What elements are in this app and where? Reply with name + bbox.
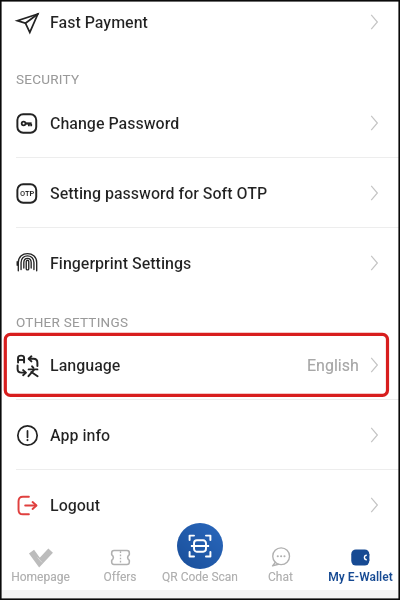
- staticText: Fast Payment: [50, 13, 148, 32]
- staticText: Change Password: [50, 114, 180, 133]
- staticText: My E-Wallet: [328, 570, 393, 584]
- other: QR Code Scan: [177, 523, 223, 569]
- staticText: Homepage: [11, 570, 70, 584]
- button[interactable]: Fingerprint Settings: [0, 228, 400, 298]
- button[interactable]: OTP: [0, 158, 400, 228]
- button[interactable]: Language: [0, 330, 400, 400]
- staticText: Setting password for Soft OTP: [50, 184, 268, 203]
- staticText: Offers: [103, 570, 137, 584]
- button[interactable]: Fast Payment: [0, 0, 400, 57]
- button[interactable]: My E-Wallet: [320, 536, 400, 600]
- staticText: App info: [50, 426, 111, 445]
- button[interactable]: QR Code Scan: [160, 536, 240, 600]
- staticText: Logout: [50, 496, 101, 515]
- button[interactable]: Homepage: [0, 536, 80, 600]
- staticText: QR Code Scan: [162, 570, 238, 584]
- button[interactable]: App info: [0, 400, 400, 470]
- staticText: OTHER SETTINGS: [16, 314, 129, 330]
- staticText: SECURITY: [16, 71, 80, 87]
- button[interactable]: Logout: [0, 470, 400, 540]
- staticText: Language: [50, 356, 121, 375]
- staticText: Fingerprint Settings: [50, 254, 192, 273]
- staticText: Chat: [268, 570, 293, 584]
- staticText: OTP: [20, 189, 35, 198]
- button[interactable]: Change Password: [0, 88, 400, 158]
- staticText: English: [307, 356, 359, 375]
- button[interactable]: Chat: [240, 536, 320, 600]
- button[interactable]: Offers: [80, 536, 160, 600]
